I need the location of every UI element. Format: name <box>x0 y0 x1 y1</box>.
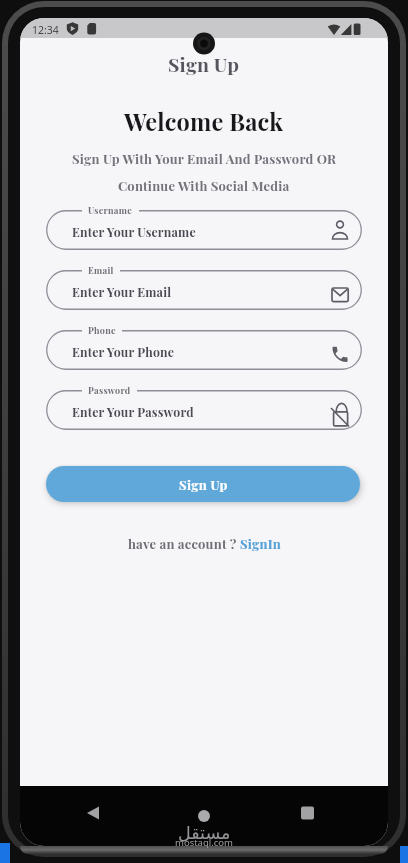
staticText: mostaql.com <box>175 836 233 849</box>
staticText: 12:34 <box>32 23 59 37</box>
staticText: have an account ? <box>128 535 240 552</box>
button[interactable]: Enter Your Username <box>46 210 362 250</box>
staticText: Enter Your Email <box>72 284 172 300</box>
button[interactable] <box>142 786 265 846</box>
button[interactable] <box>20 786 142 846</box>
staticText: Welcome Back <box>124 106 284 137</box>
staticText: Enter Your Password <box>72 404 194 420</box>
staticText: Enter Your Username <box>72 224 196 240</box>
button[interactable]: Enter Your Password <box>46 390 362 430</box>
button[interactable]: Enter Your Phone <box>46 330 362 370</box>
button[interactable]: Sign Up <box>46 466 360 502</box>
staticText: Email <box>88 264 114 276</box>
button[interactable] <box>265 786 388 846</box>
staticText: Password <box>88 384 131 396</box>
button[interactable]: Enter Your Email <box>46 270 362 310</box>
staticText: Sign Up <box>168 51 240 77</box>
staticText: Phone <box>88 324 116 336</box>
staticText: Username <box>88 204 133 216</box>
staticText: Sign Up With Your Email And Password OR <box>72 150 337 167</box>
staticText: Sign Up <box>179 476 228 493</box>
button[interactable]: SignIn <box>240 535 281 552</box>
staticText: Continue With Social Media <box>118 177 290 194</box>
staticText: Enter Your Phone <box>72 344 175 360</box>
staticText: مستقل <box>178 823 231 843</box>
